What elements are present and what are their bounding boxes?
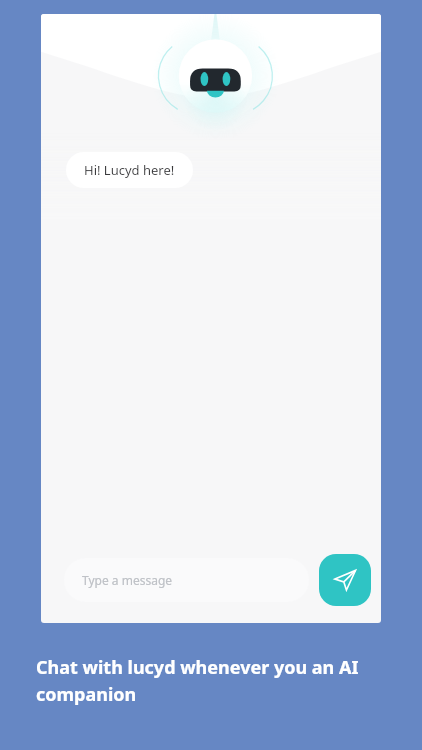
staticText: Hi! Lucyd here! xyxy=(84,161,175,179)
staticText: Type a message xyxy=(82,572,173,588)
button[interactable]: Type a message xyxy=(64,558,309,602)
staticText: Chat with lucyd whenever you an AI compa… xyxy=(36,655,396,706)
button[interactable]: Send message xyxy=(319,554,371,606)
button[interactable]: Hi! Lucyd here! xyxy=(66,152,193,188)
